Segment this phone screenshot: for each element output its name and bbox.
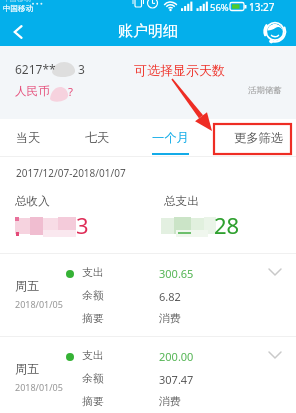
staticText: 3 bbox=[76, 210, 89, 240]
staticText: ? bbox=[68, 84, 73, 100]
button[interactable]: 周五 bbox=[0, 254, 296, 336]
staticText: 6.82 bbox=[159, 289, 181, 304]
staticText: 总收入 bbox=[15, 194, 50, 209]
staticText: 摘要 bbox=[82, 395, 104, 409]
button[interactable]: Back bbox=[0, 17, 36, 46]
staticText: 摘要 bbox=[82, 312, 104, 326]
staticText: 周五 bbox=[15, 278, 39, 293]
staticText: 消费 bbox=[159, 312, 181, 326]
staticText: 余额 bbox=[82, 289, 104, 303]
staticText: 28 bbox=[214, 210, 240, 240]
staticText: 活期储蓄 bbox=[248, 85, 282, 96]
button[interactable]: Customer service bbox=[254, 17, 296, 46]
staticText: 更多筛选 bbox=[234, 130, 284, 145]
button[interactable]: Expand bbox=[263, 263, 287, 281]
staticText: 当天 bbox=[16, 130, 41, 145]
staticText: 消费 bbox=[159, 395, 181, 409]
staticText: 支出 bbox=[82, 266, 104, 280]
staticText: 七天 bbox=[85, 130, 110, 145]
staticText: 中国移动 bbox=[3, 4, 33, 13]
button[interactable]: 当天 bbox=[2, 119, 54, 156]
staticText: 周五 bbox=[15, 361, 39, 376]
button[interactable]: 一个月 bbox=[142, 119, 199, 156]
button[interactable]: 周五 bbox=[0, 337, 296, 413]
staticText: 6217** bbox=[15, 61, 56, 77]
staticText: 余额 bbox=[82, 372, 104, 386]
button[interactable]: 更多筛选 bbox=[225, 119, 292, 156]
staticText: 2018/01/05 bbox=[15, 298, 63, 310]
staticText: 2018/01/05 bbox=[15, 381, 63, 393]
staticText: 300.65 bbox=[159, 266, 194, 281]
staticText: 200.00 bbox=[159, 349, 194, 364]
staticText: 13:27 bbox=[249, 0, 275, 14]
staticText: 3 bbox=[78, 61, 85, 77]
staticText: 56% bbox=[210, 1, 229, 14]
button[interactable]: Expand bbox=[263, 346, 287, 364]
staticText: 人民币 bbox=[15, 84, 50, 98]
staticText: 支出 bbox=[82, 349, 104, 363]
staticText: 中国移动 bbox=[3, 0, 31, 3]
staticText: 账户明细 bbox=[118, 22, 178, 41]
staticText: 一个月 bbox=[152, 130, 189, 145]
button[interactable]: 七天 bbox=[71, 119, 123, 156]
staticText: 2017/12/07-2018/01/07 bbox=[16, 166, 126, 180]
staticText: 可选择显示天数 bbox=[134, 62, 225, 78]
staticText: 总支出 bbox=[164, 194, 199, 209]
staticText: 307.47 bbox=[159, 372, 194, 387]
